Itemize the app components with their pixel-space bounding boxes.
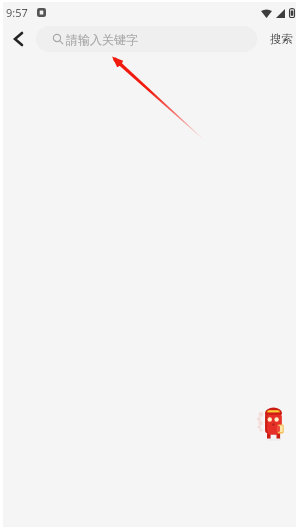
button[interactable]: 請输入关键字 <box>36 26 257 52</box>
staticText: 9:57 <box>6 5 28 20</box>
staticText: 应用下载网 <box>190 432 297 490</box>
button[interactable]: Back <box>3 23 34 55</box>
staticText: 搜索 <box>270 32 293 46</box>
button[interactable]: 搜索 <box>270 23 293 55</box>
staticText: 請输入关键字 <box>66 32 138 47</box>
